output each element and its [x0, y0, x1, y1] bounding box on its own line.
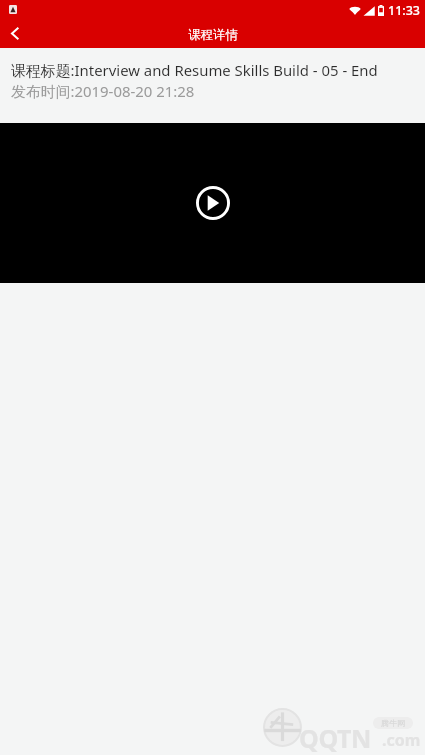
button[interactable]: Play video [0, 123, 425, 283]
staticText: .com [382, 729, 421, 751]
button[interactable]: Back [0, 20, 32, 48]
staticText: 发布时间:2019-08-20 21:28 [11, 81, 195, 101]
staticText: 课程详情 [188, 27, 238, 43]
staticText: 11:33 [388, 2, 421, 19]
staticText: QQTN [299, 721, 371, 755]
staticText: 课程标题:Interview and Resume Skills Build -… [11, 60, 378, 80]
staticText: 腾牛网 [381, 718, 405, 728]
